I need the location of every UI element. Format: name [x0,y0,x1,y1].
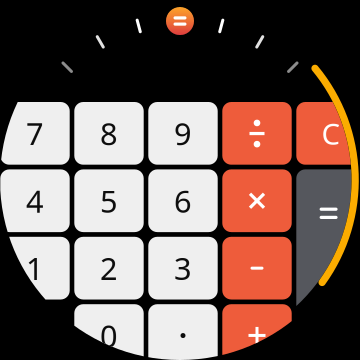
button[interactable]: 4 [0,169,70,232]
staticText: 3 [174,248,192,288]
staticText: 8 [100,113,118,154]
button[interactable]: 8 [74,102,144,165]
button[interactable]: 5 [74,169,144,232]
staticText: 2 [100,248,118,288]
button[interactable]: 2 [74,237,144,299]
button[interactable]: Multiply [222,169,292,232]
button[interactable]: 1 [0,237,70,299]
staticText: 4 [26,180,44,221]
button[interactable]: 6 [148,169,218,232]
staticText: C [321,114,340,153]
button[interactable]: 7 [0,102,70,165]
button[interactable]: Equals [296,169,360,360]
staticText: 6 [174,180,192,221]
button[interactable]: Divide [222,102,292,165]
button[interactable]: 0 [74,304,144,360]
staticText: 1 [26,248,44,288]
button[interactable]: Decimal point [148,304,218,360]
staticText: 7 [26,113,44,154]
button[interactable]: Clear [296,102,360,165]
button[interactable]: Add [222,304,292,360]
button[interactable]: 9 [148,102,218,165]
staticText: 9 [174,113,192,154]
button[interactable]: 3 [148,237,218,299]
staticText: 5 [100,180,118,221]
button[interactable]: Subtract [222,237,292,299]
button[interactable]: Equals [166,7,194,35]
staticText: 0 [100,315,118,356]
